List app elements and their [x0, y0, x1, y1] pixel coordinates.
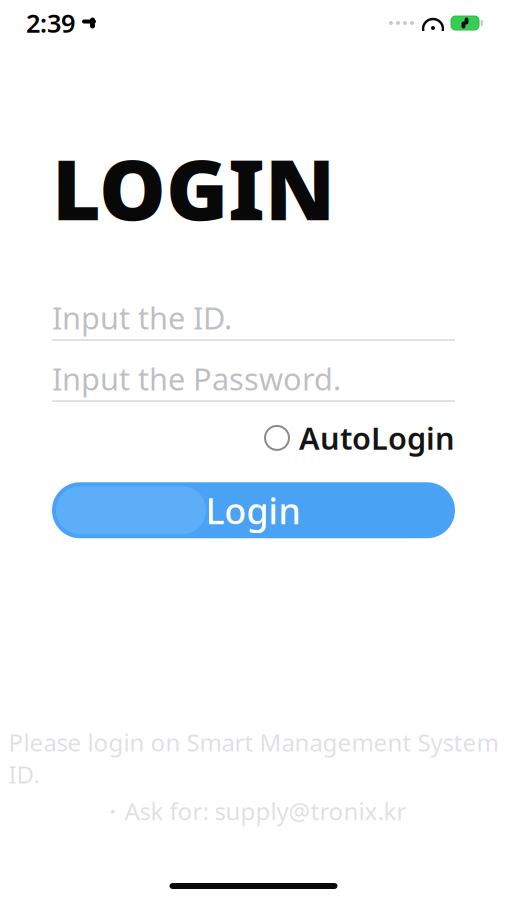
staticText: 2:39: [26, 6, 75, 40]
button[interactable]: Input the ID.: [52, 299, 455, 340]
button[interactable]: Login: [52, 482, 455, 538]
staticText: ・Ask for: supply@tronix.kr: [100, 795, 406, 827]
button[interactable]: AutoLogin: [265, 417, 455, 458]
staticText: Login: [205, 486, 301, 534]
staticText: Input the Password.: [52, 358, 341, 399]
button[interactable]: Input the Password.: [52, 360, 455, 401]
staticText: Please login on Smart Management System …: [8, 726, 498, 790]
staticText: Input the ID.: [52, 297, 232, 338]
staticText: AutoLogin: [299, 417, 455, 458]
staticText: LOGIN: [52, 132, 335, 243]
